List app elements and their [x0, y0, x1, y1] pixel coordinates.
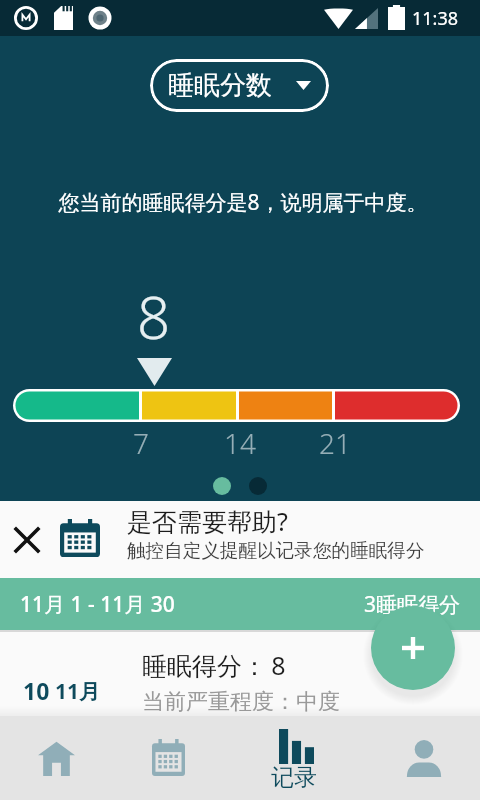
button[interactable]: 关闭: [5, 518, 49, 562]
button[interactable]: 关闭: [0, 501, 480, 578]
button[interactable]: 添加: [371, 606, 455, 690]
staticText: 11月: [55, 677, 101, 706]
staticText: 您当前的睡眠得分是8，说明属于中度。: [58, 188, 428, 217]
staticText: 21: [319, 424, 351, 462]
button[interactable]: 个人资料: [384, 716, 480, 800]
staticText: 11:38: [412, 6, 459, 31]
button[interactable]: 睡眠分数: [150, 59, 329, 112]
staticText: 记录: [271, 763, 317, 792]
button[interactable]: 11月 1 - 11月 30: [0, 578, 480, 630]
button[interactable]: 日历: [136, 716, 256, 800]
staticText: 14: [224, 424, 256, 462]
staticText: 8: [137, 277, 171, 356]
staticText: 7: [133, 424, 149, 462]
staticText: 触控自定义提醒以记录您的睡眠得分: [127, 539, 425, 562]
staticText: 3睡眠得分: [364, 590, 461, 619]
button[interactable]: 10: [0, 632, 480, 716]
staticText: 10: [23, 675, 50, 706]
staticText: 睡眠分数: [168, 69, 272, 102]
button[interactable]: 主页: [16, 716, 136, 800]
button[interactable]: 记录: [255, 716, 375, 800]
staticText: 睡眠得分： 8: [142, 648, 286, 682]
staticText: 当前严重程度：中度: [142, 688, 340, 716]
staticText: 是否需要帮助?: [127, 504, 288, 538]
staticText: 11月 1 - 11月 30: [20, 590, 175, 619]
